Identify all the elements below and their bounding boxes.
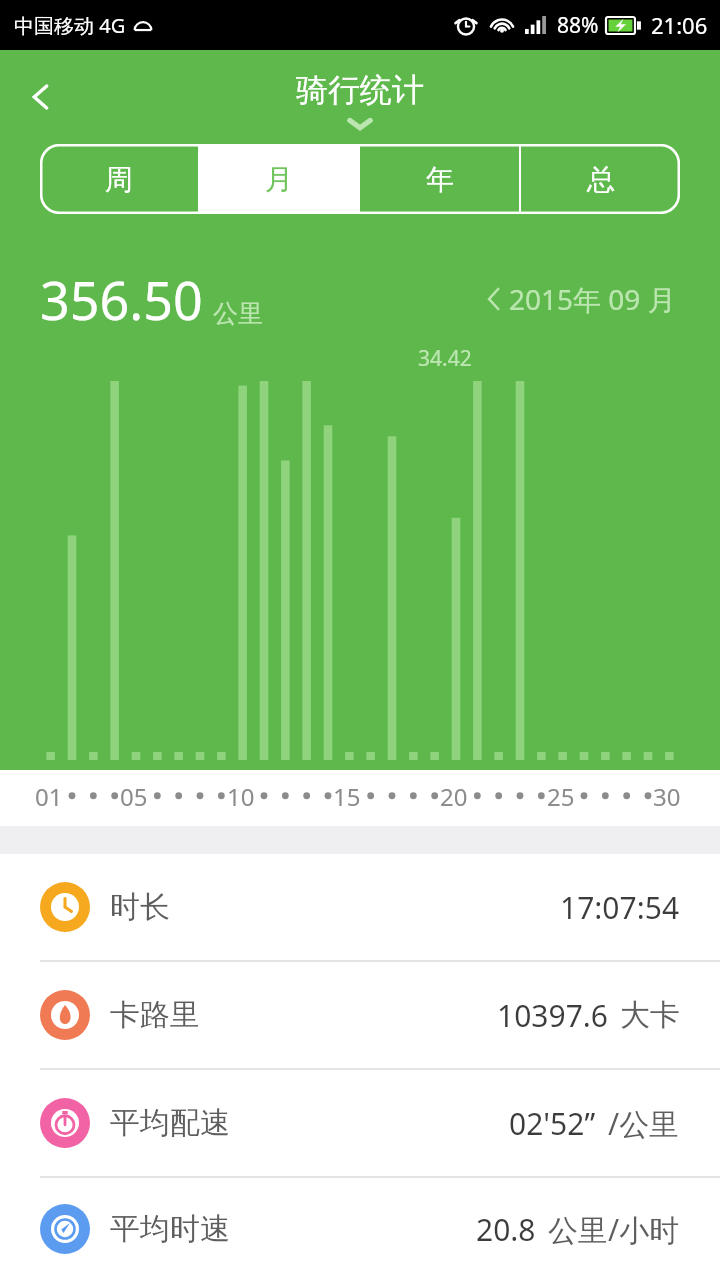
button[interactable]: 2015年 09 月 — [487, 280, 676, 318]
button[interactable]: 总 — [521, 144, 680, 214]
staticText: 年 — [426, 162, 454, 197]
staticText: 20.8 — [476, 1209, 536, 1250]
button[interactable]: 卡路里 — [0, 962, 720, 1068]
button[interactable]: Expand — [344, 116, 376, 132]
staticText: 10397.6 — [497, 995, 608, 1036]
staticText: 平均时速 — [110, 1210, 230, 1248]
staticText: 周 — [105, 162, 133, 197]
staticText: 卡路里 — [110, 996, 200, 1034]
button[interactable]: Back — [12, 68, 70, 126]
staticText: 34.42 — [418, 344, 472, 373]
button[interactable]: 平均时速 — [0, 1178, 720, 1280]
staticText: 01 — [35, 780, 63, 813]
staticText: /公里 — [608, 1103, 680, 1144]
staticText: 大卡 — [620, 996, 680, 1034]
staticText: 骑行统计 — [296, 70, 424, 110]
button[interactable]: 时长 — [0, 854, 720, 960]
staticText: 25 — [547, 780, 575, 813]
button[interactable]: 周 — [40, 144, 198, 214]
staticText: 公里 — [213, 298, 263, 329]
staticText: 10 — [227, 780, 255, 813]
staticText: 15 — [333, 780, 361, 813]
button[interactable]: 月 — [200, 144, 358, 214]
staticText: 02'52” — [509, 1103, 596, 1144]
staticText: 中国移动 4G — [14, 12, 126, 39]
staticText: 平均配速 — [110, 1104, 230, 1142]
staticText: 356.50 — [40, 264, 203, 335]
staticText: 时长 — [110, 888, 170, 926]
staticText: 21:06 — [651, 10, 708, 40]
button[interactable]: 平均配速 — [0, 1070, 720, 1176]
staticText: 月 — [265, 162, 293, 197]
staticText: 88% — [557, 11, 599, 40]
staticText: 17:07:54 — [560, 887, 680, 928]
staticText: 2015年 09 月 — [509, 280, 676, 318]
button[interactable]: 年 — [360, 144, 519, 214]
staticText: 30 — [653, 780, 681, 813]
staticText: 05 — [120, 780, 148, 813]
staticText: 20 — [440, 780, 468, 813]
staticText: 公里/小时 — [548, 1209, 680, 1250]
staticText: 总 — [587, 162, 615, 197]
